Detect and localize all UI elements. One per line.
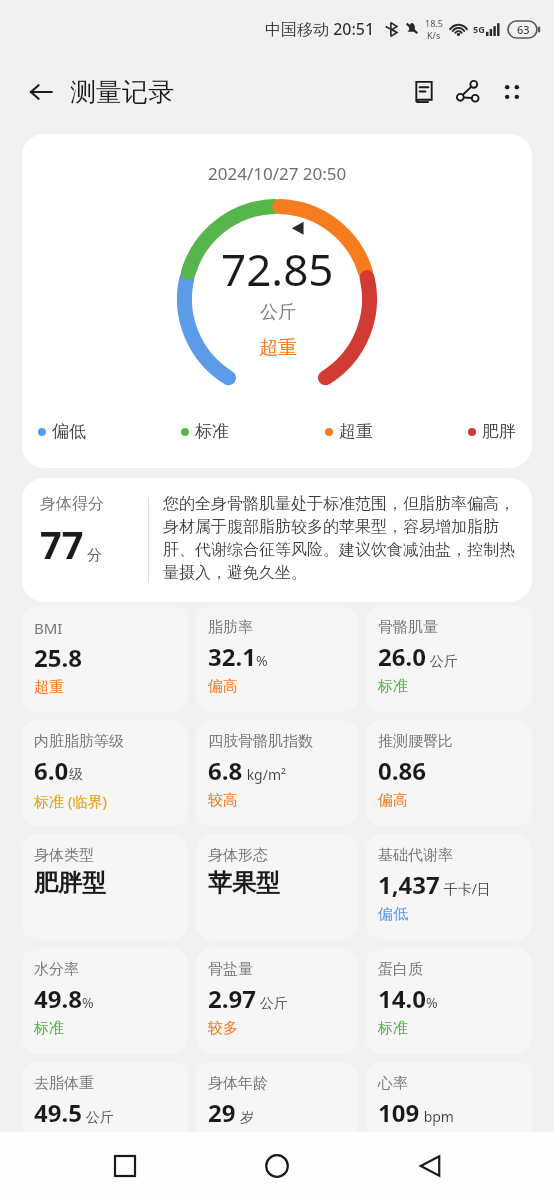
staticText: 标准 [195,421,229,442]
staticText: 0.86 [378,754,426,787]
button[interactable]: Home [249,1138,305,1194]
button[interactable]: Share [446,70,490,114]
staticText: 骨骼肌量 [378,618,438,637]
staticText: 四肢骨骼肌指数 [208,732,313,751]
button[interactable]: 蛋白质 [366,948,532,1054]
button[interactable]: 骨骼肌量 [366,606,532,712]
staticText: 偏高 [378,791,408,810]
staticText: 身体类型 [34,846,94,865]
staticText: 中国移动 20:51 [265,18,375,40]
staticText: 千卡/日 [440,879,491,898]
staticText: 身体形态 [208,846,268,865]
staticText: kg/m² [243,765,286,784]
staticText: 心率 [378,1074,408,1093]
staticText: 标准 [34,1019,64,1038]
staticText: 骨盐量 [208,960,253,979]
staticText: 63 [517,22,530,37]
staticText: bpm [420,1107,454,1126]
staticText: 14.0 [378,982,426,1015]
staticText: 6.0 [34,754,69,787]
staticText: 您的全身骨骼肌量处于标准范围，但脂肪率偏高，身材属于腹部脂肪较多的苹果型，容易增… [163,494,516,583]
button[interactable]: Back [24,75,58,109]
button[interactable]: 推测腰臀比 [366,720,532,826]
staticText: 标准 [378,677,408,696]
staticText: 分 [87,546,102,565]
staticText: 公斤 [82,1107,114,1126]
staticText: 1,437 [378,868,440,901]
staticText: 偏低 [378,905,408,924]
staticText: 超重 [259,336,297,360]
staticText: 26.0 [378,640,426,673]
staticText: 32.1 [208,640,256,673]
button[interactable]: More options [490,70,534,114]
staticText: 身体得分 [40,494,104,514]
staticText: 脂肪率 [208,618,253,637]
staticText: 18.5 [425,17,443,29]
staticText: 测量记录 [70,76,174,109]
staticText: 肥胖型 [34,868,106,898]
staticText: 5G [473,23,485,35]
staticText: 偏低 [52,421,86,442]
staticText: 109 [378,1096,420,1129]
button[interactable]: 身体形态 [196,834,358,940]
button[interactable]: 身体得分 [22,478,532,602]
staticText: 去脂体重 [34,1074,94,1093]
staticText: 公斤 [256,993,288,1012]
staticText: 超重 [339,421,373,442]
button[interactable]: 骨盐量 [196,948,358,1054]
staticText: 水分率 [34,960,79,979]
staticText: 偏高 [208,677,238,696]
staticText: 72.85 [221,239,334,299]
staticText: BMI [34,618,63,638]
staticText: 49.8 [34,982,82,1015]
button[interactable]: 去脂体重 [22,1062,188,1140]
staticText: 公斤 [260,301,296,324]
staticText: 基础代谢率 [378,846,453,865]
button[interactable]: BMI [22,606,188,712]
staticText: 苹果型 [208,868,280,898]
button[interactable]: Records [402,70,446,114]
staticText: 2024/10/27 20:50 [208,162,347,185]
staticText: 身体年龄 [208,1074,268,1093]
staticText: 级 [69,766,83,784]
staticText: 推测腰臀比 [378,732,453,751]
staticText: 49.5 [34,1096,82,1129]
staticText: 标准 (临界) [34,791,107,811]
staticText: 公斤 [426,651,458,670]
button[interactable]: 内脏脂肪等级 [22,720,188,826]
staticText: 25.8 [34,641,82,674]
button[interactable]: 脂肪率 [196,606,358,712]
staticText: 6.8 [208,754,243,787]
staticText: 较高 [208,791,238,810]
staticText: 29 [208,1096,236,1129]
button[interactable]: 水分率 [22,948,188,1054]
button[interactable]: Back [402,1138,458,1194]
button[interactable]: 心率 [366,1062,532,1140]
staticText: 蛋白质 [378,960,423,979]
staticText: % [426,993,438,1012]
staticText: 肥胖 [482,421,516,442]
button[interactable]: 身体类型 [22,834,188,940]
staticText: 岁 [236,1107,254,1126]
staticText: 较多 [208,1019,238,1038]
button[interactable]: 基础代谢率 [366,834,532,940]
staticText: 2.97 [208,982,256,1015]
button[interactable]: 身体年龄 [196,1062,358,1140]
button[interactable]: 四肢骨骼肌指数 [196,720,358,826]
staticText: 超重 [34,678,64,697]
staticText: % [256,651,268,670]
button[interactable]: 2024/10/27 20:50 [22,134,532,468]
staticText: 内脏脂肪等级 [34,732,124,751]
staticText: 77 [40,518,84,570]
staticText: 标准 [378,1019,408,1038]
staticText: % [82,993,94,1012]
staticText: K/s [427,29,441,41]
button[interactable]: Recent apps [97,1138,153,1194]
